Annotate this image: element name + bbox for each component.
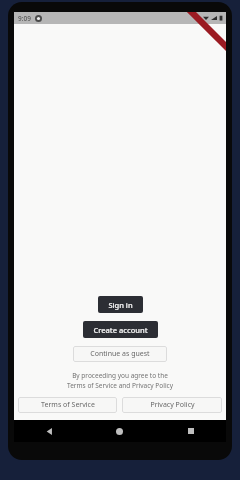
button[interactable]: Sign in	[98, 296, 143, 313]
staticText: Privacy Policy	[150, 400, 195, 410]
button[interactable]: Continue as guest	[73, 346, 167, 362]
button[interactable]: Recent apps	[155, 420, 226, 442]
button[interactable]: Back	[14, 420, 84, 442]
button[interactable]: Privacy Policy	[122, 397, 222, 413]
staticText: Terms of Service and Privacy Policy	[67, 381, 173, 390]
button[interactable]: Terms of Service	[18, 397, 117, 413]
staticText: Sign in	[108, 300, 133, 310]
staticText: Create account	[93, 325, 148, 335]
staticText: Terms of Service	[41, 400, 95, 410]
button[interactable]: Home	[84, 420, 155, 442]
button[interactable]: Create account	[83, 321, 158, 338]
staticText: By proceeding you agree to the	[72, 371, 168, 380]
staticText: 9:09	[18, 14, 31, 23]
staticText: Continue as guest	[90, 349, 150, 359]
